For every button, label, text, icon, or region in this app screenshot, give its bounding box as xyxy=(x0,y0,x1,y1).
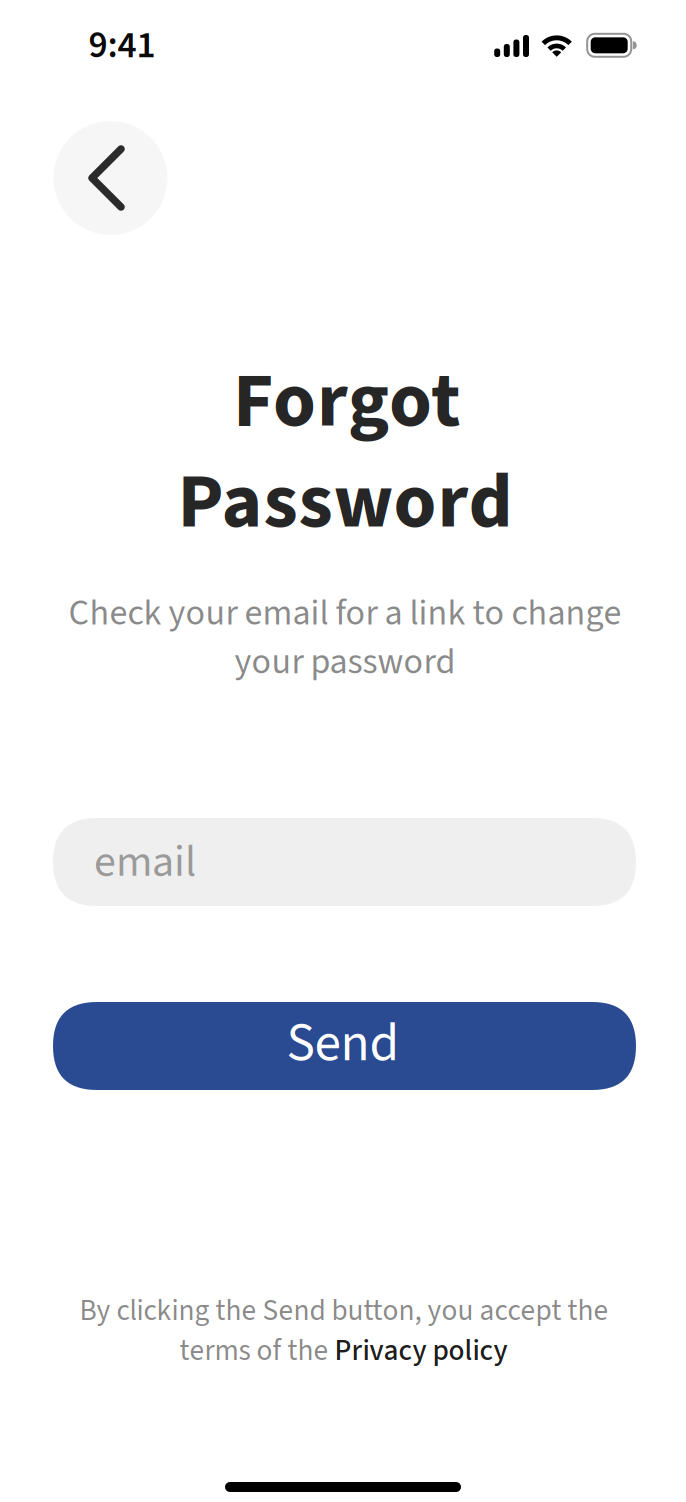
staticText: Privacy policy xyxy=(334,1330,507,1372)
button[interactable]: email xyxy=(53,818,636,906)
staticText: Check your email for a link to change xyxy=(68,588,621,639)
staticText: 9:41 xyxy=(88,19,155,72)
staticText: By clicking the Send button, you accept … xyxy=(79,1290,608,1332)
button[interactable]: Send xyxy=(53,1002,636,1090)
button[interactable]: Privacy policy xyxy=(334,1330,507,1372)
staticText: your password xyxy=(234,636,455,688)
button[interactable] xyxy=(53,121,167,235)
staticText: terms of the xyxy=(179,1330,334,1372)
staticText: Forgot xyxy=(233,346,461,456)
staticText: Password xyxy=(177,447,512,557)
staticText: Send xyxy=(286,1005,399,1081)
staticText: email xyxy=(94,831,196,893)
